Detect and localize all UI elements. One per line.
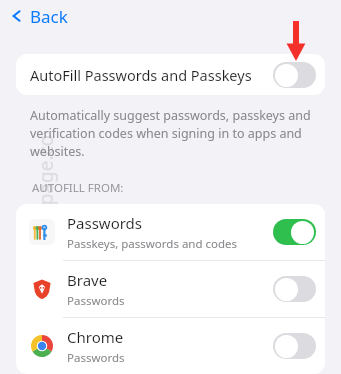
staticText: @thegeekpage.com bbox=[33, 125, 61, 295]
button[interactable]: Passwords bbox=[29, 204, 316, 260]
staticText: Brave bbox=[67, 270, 108, 290]
staticText: Back bbox=[30, 5, 68, 28]
button[interactable]: AutoFill Passwords and Passkeys bbox=[16, 54, 325, 95]
button[interactable]: Back bbox=[10, 0, 341, 32]
staticText: AUTOFILL FROM: bbox=[32, 180, 124, 196]
button[interactable]: Chrome bbox=[29, 318, 316, 374]
button[interactable]: Brave bbox=[29, 261, 316, 317]
staticText: Passwords bbox=[67, 213, 143, 233]
button[interactable]: Toggle off bbox=[273, 62, 316, 88]
staticText: AutoFill Passwords and Passkeys bbox=[30, 65, 252, 85]
staticText: Chrome bbox=[67, 327, 124, 347]
staticText: Passwords bbox=[67, 293, 125, 309]
staticText: Passwords bbox=[67, 350, 125, 366]
staticText: Passkeys, passwords and codes bbox=[67, 236, 238, 252]
button[interactable]: Toggle off bbox=[273, 276, 316, 302]
button[interactable]: Toggle off bbox=[273, 333, 316, 359]
button[interactable]: Toggle on bbox=[273, 219, 316, 245]
staticText: Automatically suggest passwords, passkey… bbox=[30, 107, 311, 160]
